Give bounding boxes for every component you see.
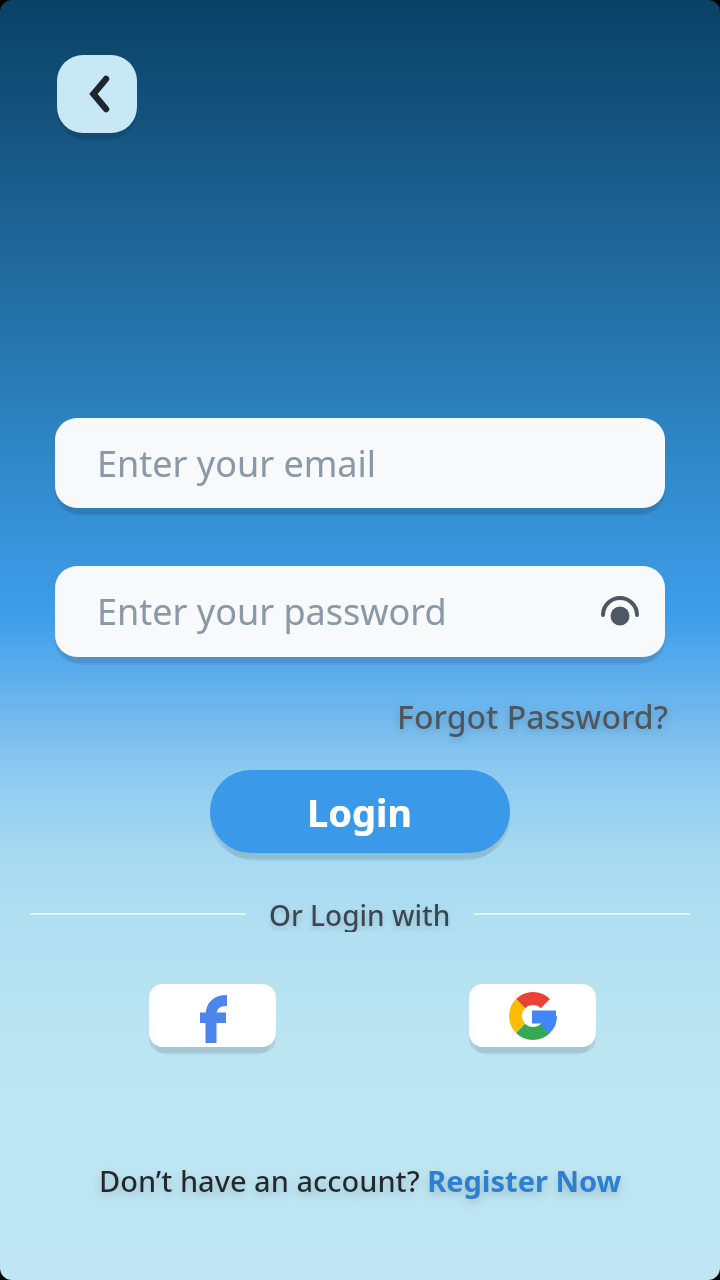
staticText: Or Login with [269,896,451,932]
button[interactable]: Login [210,770,510,853]
button[interactable]: Enter your email [55,418,665,508]
button[interactable] [469,984,596,1047]
button[interactable] [149,984,276,1047]
staticText: Enter your password [97,587,447,636]
staticText: Don’t have an account? Register Now [99,1161,622,1200]
staticText: Login [307,786,413,838]
button[interactable]: Enter your password [55,566,665,657]
button[interactable] [57,55,137,133]
button[interactable]: Don’t have an account? Register Now [0,1155,720,1205]
staticText: Forgot Password? [397,695,668,739]
staticText: Enter your email [97,439,377,488]
button[interactable]: Forgot Password? [0,695,668,739]
